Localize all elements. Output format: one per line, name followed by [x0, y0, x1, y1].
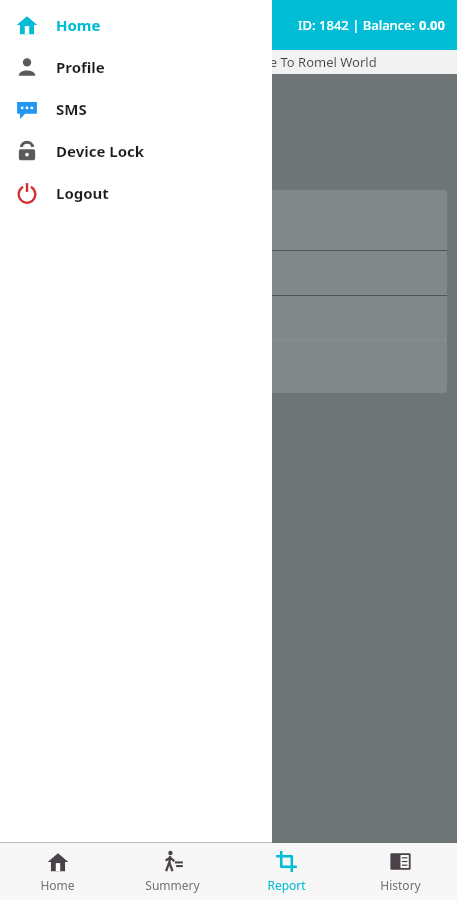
staticText: ID: 1842 | Balance:	[298, 16, 419, 34]
staticText: Welcome To Romel World	[221, 53, 377, 71]
button[interactable]: Home	[0, 4, 272, 46]
staticText: Device Lock	[56, 141, 145, 161]
button[interactable]: Back	[14, 8, 48, 42]
button[interactable]: History	[343, 843, 457, 900]
staticText: Add	[34, 98, 67, 121]
button[interactable]: Profile	[0, 46, 272, 88]
staticText: Profile	[56, 57, 105, 77]
staticText: Summery	[145, 877, 200, 893]
button[interactable]: Report	[229, 843, 343, 900]
staticText: 0.00	[419, 16, 445, 34]
staticText: SMS	[56, 99, 87, 119]
button[interactable]: Search	[8, 142, 70, 176]
button[interactable]: Add	[8, 88, 92, 130]
button[interactable]: Logout	[0, 172, 272, 214]
staticText: Home	[40, 877, 75, 893]
staticText: History	[380, 877, 421, 893]
staticText: Report	[267, 877, 306, 893]
button[interactable]: Home	[0, 843, 115, 900]
button[interactable]: Summery	[115, 843, 229, 900]
staticText: Logout	[56, 183, 109, 203]
staticText: Home	[56, 15, 101, 35]
staticText: demo	[57, 12, 109, 38]
button[interactable]: SMS	[0, 88, 272, 130]
button[interactable]: Device Lock	[0, 130, 272, 172]
